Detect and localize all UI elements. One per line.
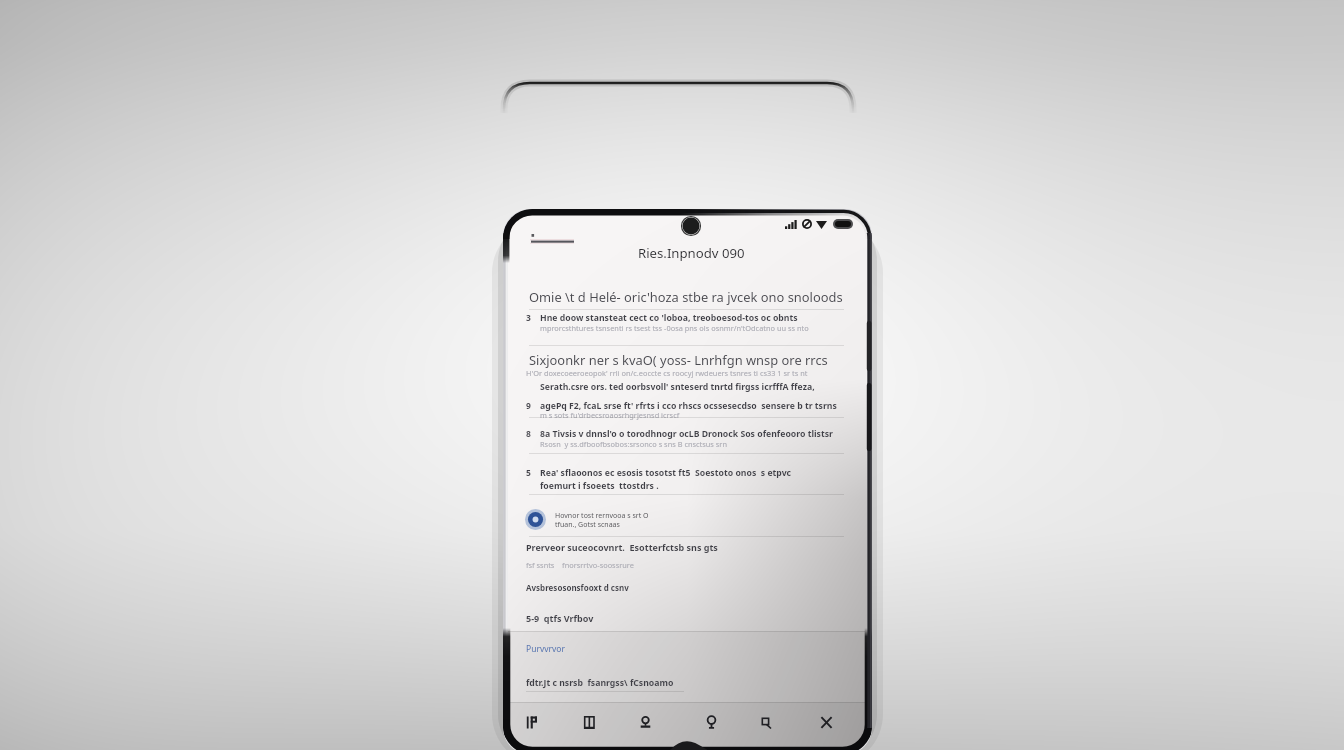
staticText: Hne doow stansteat cect co 'loboa, treob… [540,312,798,324]
staticText: m s sots fu'drbecsroaosrhgrjesnsd icrscf [540,410,680,420]
staticText: Prerveor suceocovnrt. Esotterfctsb sns g… [526,541,718,553]
button[interactable]: Close [809,705,843,739]
button[interactable]: Library [572,705,606,739]
button[interactable]: Purvvrvor [526,643,566,655]
staticText: H'Or doxecoeeroeopok' rrli on/c.eoccte c… [526,368,808,378]
staticText: agePq F2, fcaL srse ft' rfrts i cco rhsc… [540,400,837,412]
staticText: 8 [526,428,531,440]
staticText: fsf ssnts fnorsrrtvo-soossrure [526,560,634,570]
button[interactable]: Menu [530,233,576,247]
button[interactable]: Notes [749,705,783,739]
staticText: 5 [526,467,531,479]
staticText: 3 [526,312,531,324]
staticText: Hovnor tost rernvooa s srt O [555,511,649,521]
staticText: Rsosn y ss.dfboofbsobos:srsonco s sns B … [540,439,727,449]
staticText: fdtr.Jt c nsrsb fsanrgss\ fCsnoamo [526,677,674,689]
staticText: Sixjoonkr ner s kvaO( yoss- Lnrhfgn wnsp… [529,351,828,369]
staticText: Rea' sflaoonos ec esosis tosotst ft5 Soe… [540,467,792,479]
button[interactable]: Bookmark [628,705,662,739]
staticText: 5-9 qtfs Vrfbov [526,612,594,624]
button[interactable]: Back [515,705,549,739]
button[interactable]: Ries.Inpnodv 090 [638,244,745,262]
staticText: Avsbresosonsfooxt d csnv [526,582,629,593]
staticText: 9 [526,400,531,412]
staticText: mprorcsthtures tsnsenti rs tsest tss -0o… [540,323,809,333]
staticText: foemurt i fsoeets ttostdrs . [540,480,659,492]
staticText: 8a Tivsis v dnnsl'o o torodhnogr ocLB Dr… [540,428,833,440]
staticText: Omie \t d Helé- oric'hoza stbe ra jvcek … [529,288,843,306]
button[interactable]: Search [694,705,728,739]
staticText: tfuan., Gotst scnaas [555,520,620,530]
staticText: Serath.csre ors. ted oorbsvoll' snteserd… [540,381,815,393]
